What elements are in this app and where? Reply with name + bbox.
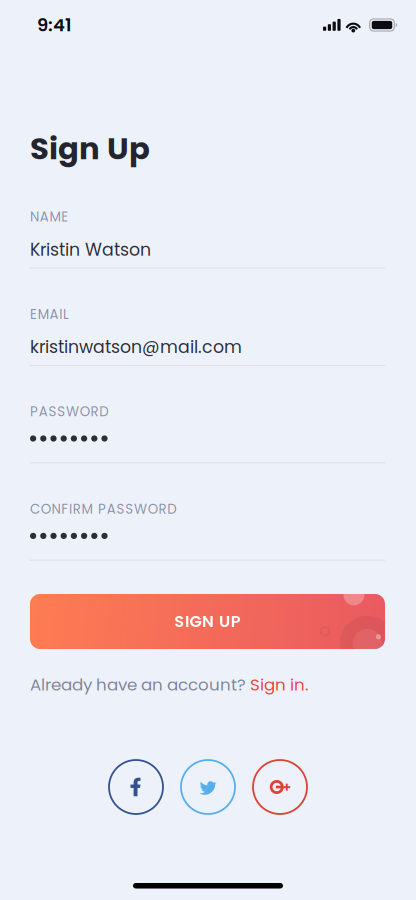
staticText: PASSWORD [30,402,108,421]
staticText: NAME [30,207,68,226]
staticText: Kristin Watson [30,237,151,262]
staticText: CONFIRM PASSWORD [30,500,176,518]
button[interactable]: Sign up with Google Plus [252,759,308,815]
button[interactable]: SIGN UP [30,594,385,649]
button[interactable]: Sign up with Facebook [108,759,164,815]
staticText: Already have an account? [30,673,250,696]
staticText: EMAIL [30,305,69,324]
staticText: kristinwatson@mail.com [30,335,242,359]
button[interactable]: Sign up with Twitter [180,759,236,815]
staticText: SIGN UP [174,610,241,633]
staticText: Sign in. [250,673,309,696]
staticText: 9:41 [37,12,72,38]
button[interactable]: Already have an account? [30,673,309,696]
staticText: Sign Up [30,127,150,170]
